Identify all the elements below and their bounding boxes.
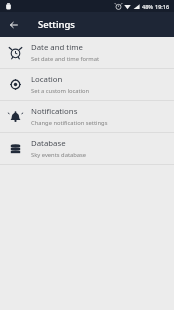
- staticText: 19:16: [155, 3, 170, 10]
- staticText: Settings: [38, 18, 75, 31]
- button[interactable]: Notifications: [0, 101, 174, 132]
- staticText: Database: [31, 138, 66, 149]
- button[interactable]: Database: [0, 133, 174, 164]
- staticText: Sky events database: [31, 151, 87, 159]
- staticText: Set a custom location: [31, 87, 90, 95]
- button[interactable]: Location: [0, 69, 174, 100]
- staticText: Date and time: [31, 42, 83, 53]
- button[interactable]: Date and time: [0, 37, 174, 68]
- staticText: Location: [31, 74, 63, 85]
- button[interactable]: Back: [5, 16, 23, 34]
- staticText: Set date and time format: [31, 55, 100, 63]
- staticText: Change notification settings: [31, 119, 108, 127]
- staticText: 48%: [142, 3, 153, 10]
- staticText: Notifications: [31, 106, 78, 117]
